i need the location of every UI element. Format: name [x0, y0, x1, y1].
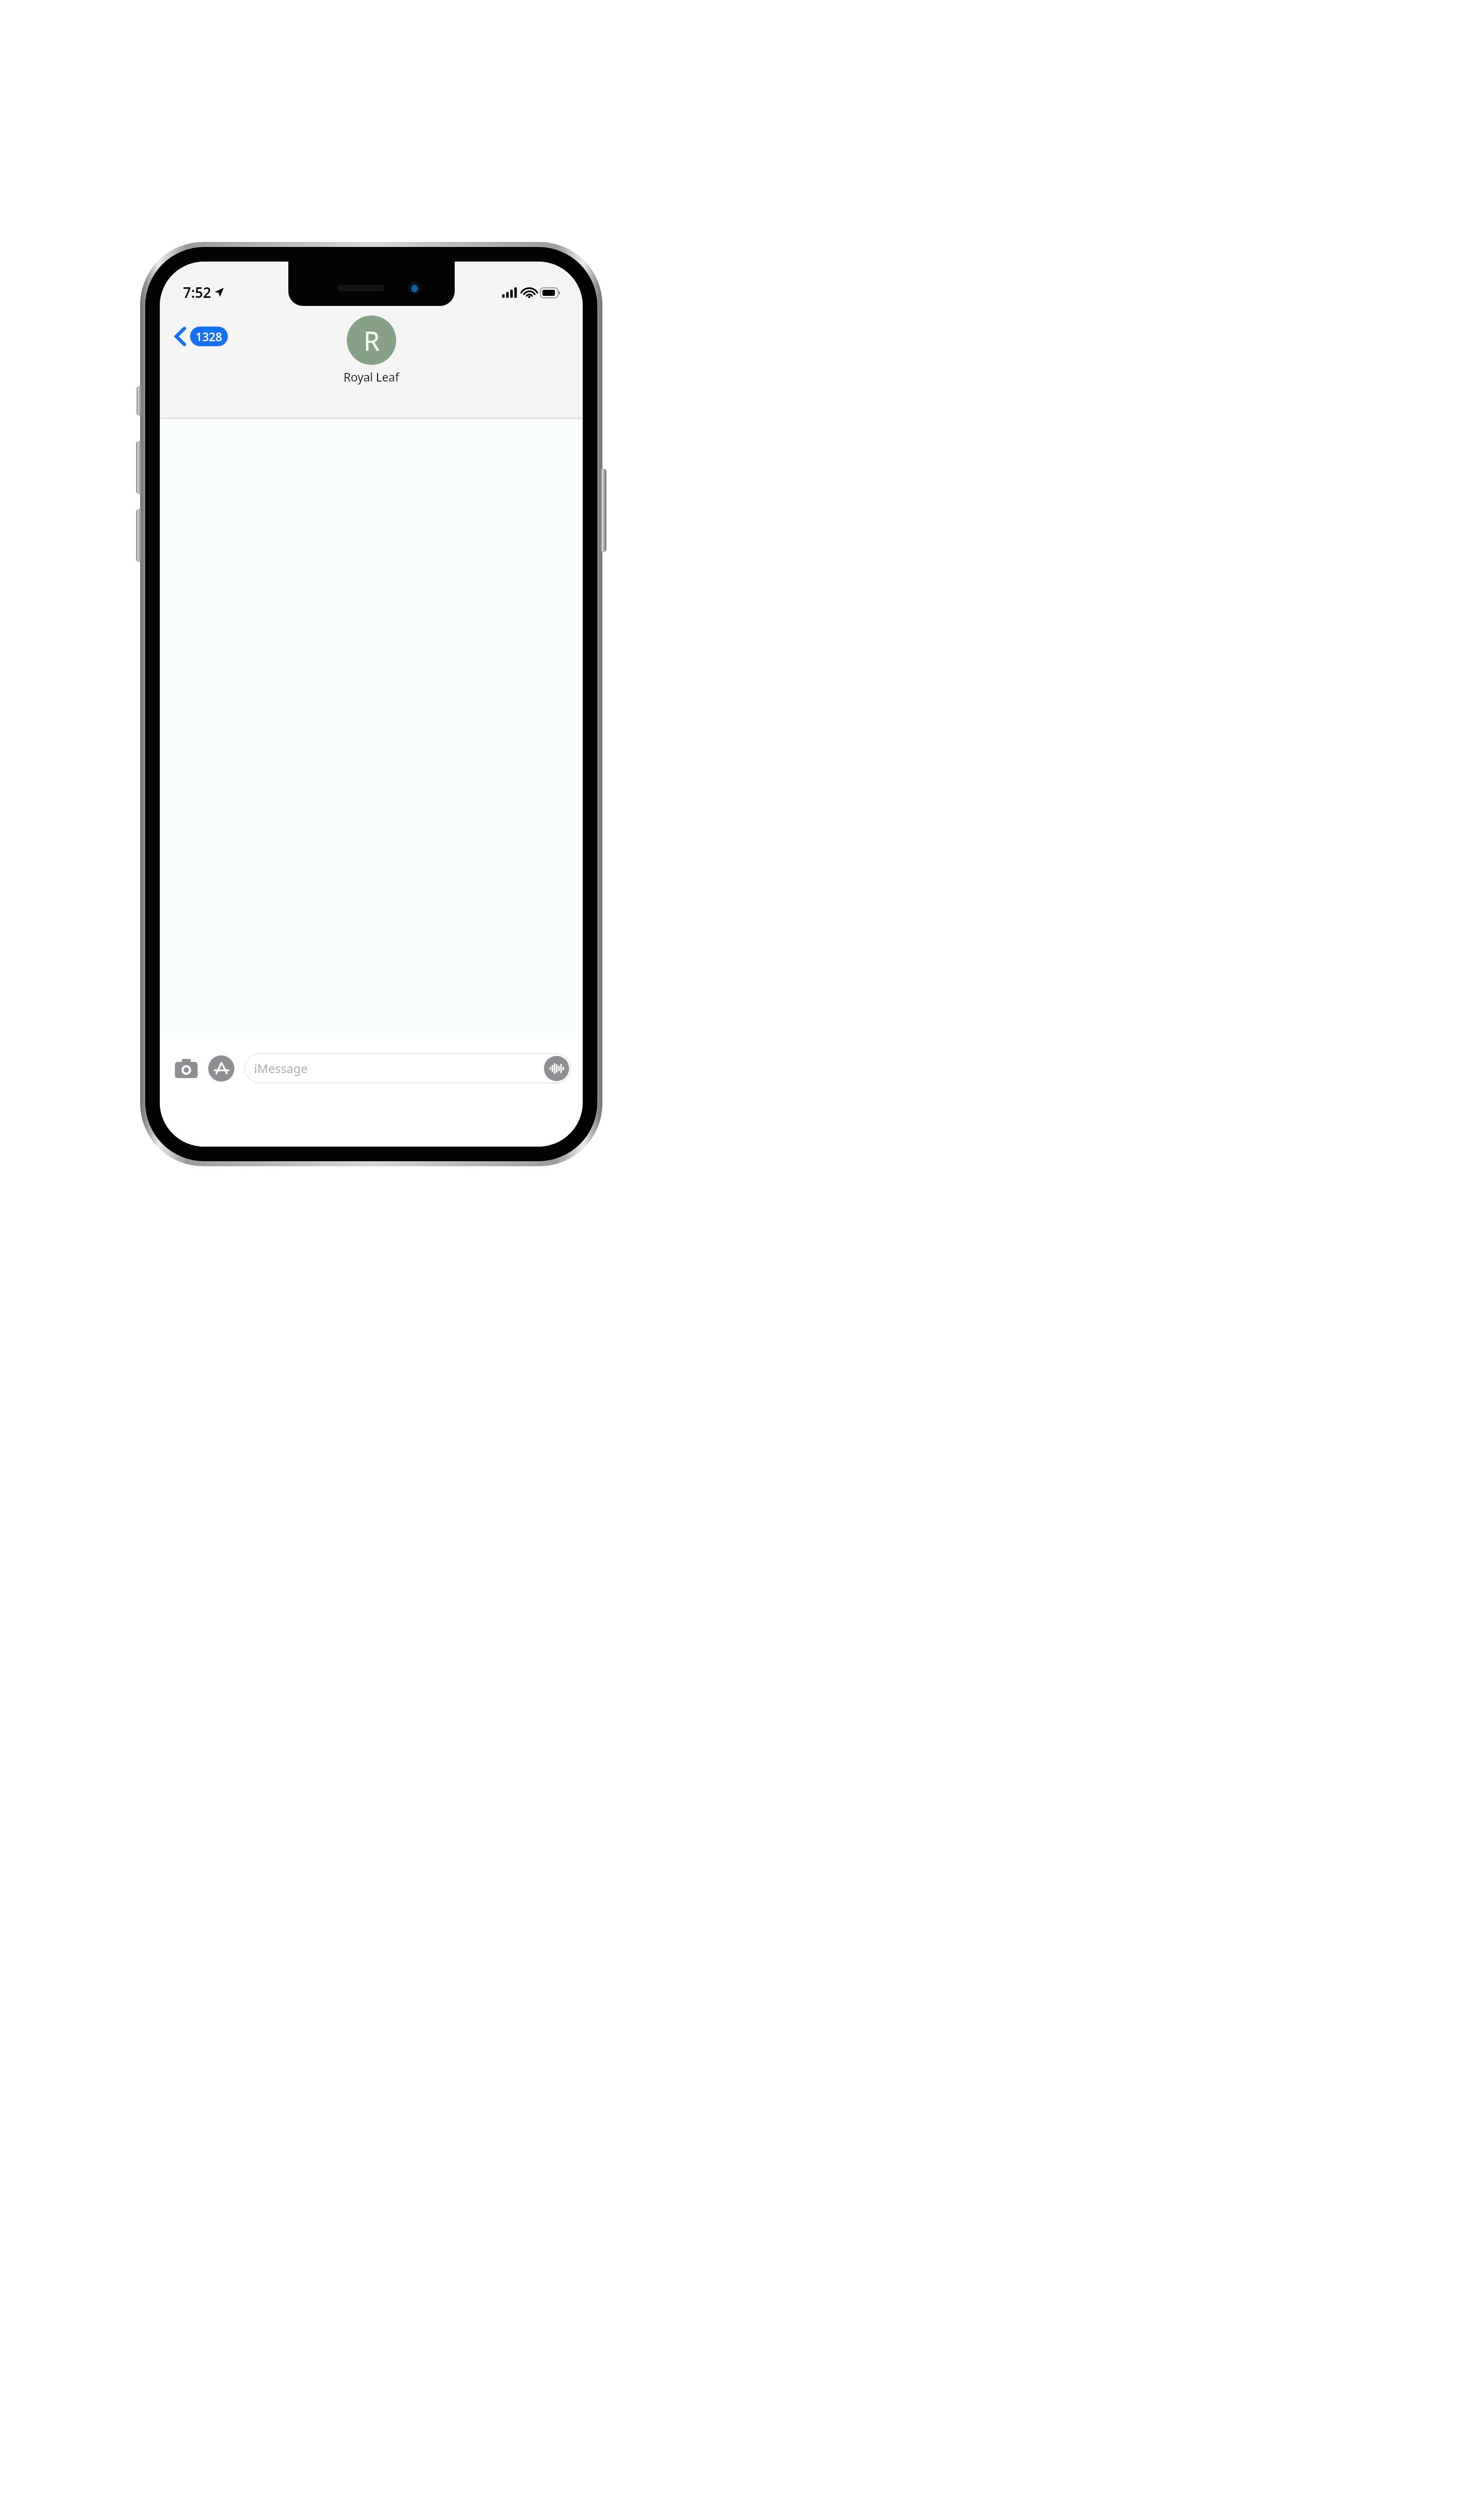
button[interactable]: Record audio message	[544, 1056, 569, 1081]
staticText: Royal Leaf	[343, 369, 399, 385]
button[interactable]: R	[337, 314, 405, 386]
button[interactable]: iMessage	[244, 1053, 571, 1083]
button[interactable]: Apps	[208, 1055, 234, 1082]
staticText: iMessage	[254, 1060, 308, 1077]
button[interactable]: Camera	[171, 1054, 201, 1083]
staticText: 7:52	[183, 283, 211, 302]
staticText: 1328	[196, 329, 222, 344]
button[interactable]: Back to 1328 conversations	[171, 324, 231, 349]
staticText: R	[363, 323, 380, 358]
